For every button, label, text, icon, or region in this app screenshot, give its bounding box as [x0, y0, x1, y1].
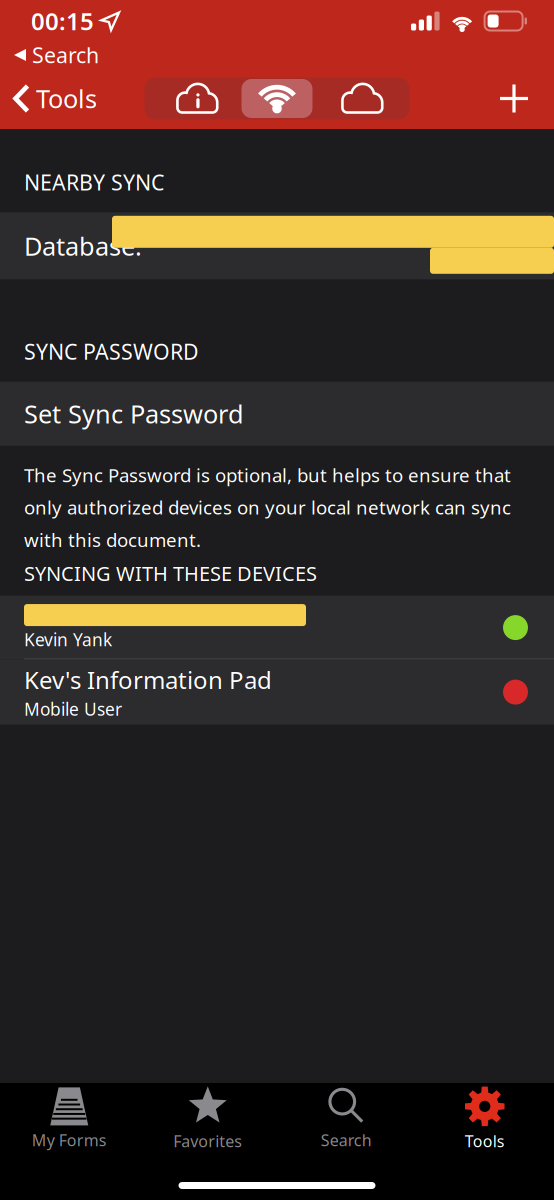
button[interactable]: Document info	[147, 77, 241, 119]
staticText: Set Sync Password	[24, 397, 244, 430]
staticText: Mobile User	[24, 697, 122, 720]
button[interactable]: Kevin Yank	[0, 596, 554, 660]
staticText: Favorites	[173, 1130, 242, 1152]
button[interactable]: Nearby sync	[241, 79, 312, 118]
staticText: Search	[321, 1129, 372, 1151]
button[interactable]: Tools	[415, 1083, 554, 1155]
staticText: Tools	[36, 82, 97, 115]
button[interactable]: Search	[277, 1083, 415, 1155]
staticText: Database:	[24, 229, 142, 263]
staticText: SYNC PASSWORD	[24, 337, 199, 366]
button[interactable]: Database:	[0, 212, 554, 279]
button[interactable]: Add	[482, 71, 554, 126]
staticText: My Forms	[32, 1129, 107, 1151]
button[interactable]: Favorites	[138, 1083, 277, 1155]
button[interactable]: Set Sync Password	[0, 382, 554, 446]
staticText: Search	[32, 41, 99, 69]
staticText: SYNCING WITH THESE DEVICES	[24, 560, 317, 587]
staticText: NEARBY SYNC	[24, 168, 164, 196]
button[interactable]: Cloud sync	[312, 77, 406, 119]
button[interactable]: Kev's Information Pad	[0, 660, 554, 725]
staticText: Tools	[465, 1130, 505, 1152]
button[interactable]: My Forms	[0, 1083, 138, 1155]
staticText: Kevin Yank	[24, 628, 112, 651]
staticText: Kev's Information Pad	[24, 664, 272, 695]
staticText: 00:15	[31, 5, 94, 37]
button[interactable]: Tools	[0, 71, 107, 126]
staticText: The Sync Password is optional, but helps…	[24, 463, 511, 552]
